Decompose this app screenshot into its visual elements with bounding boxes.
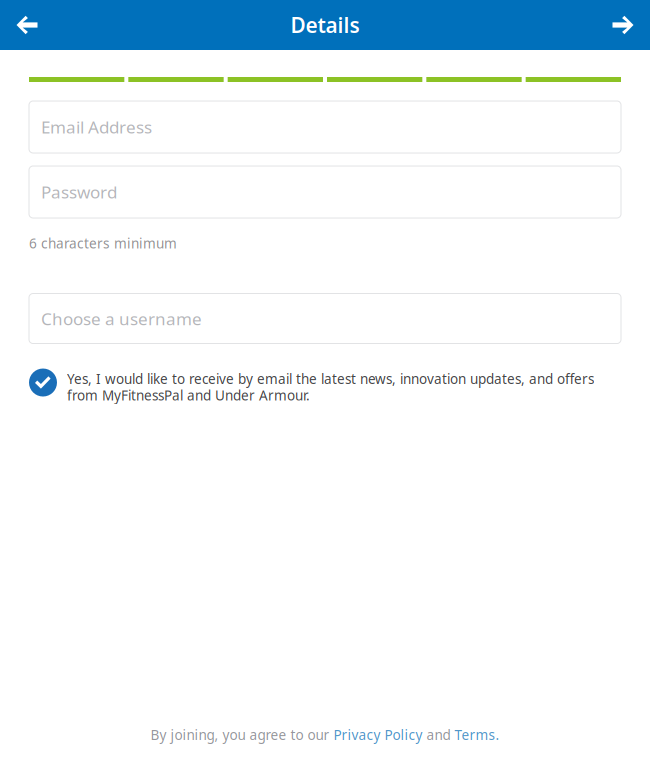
- staticText: Yes, I would like to receive by email th…: [67, 369, 594, 388]
- button[interactable]: Next: [596, 0, 650, 50]
- button[interactable]: Choose a username: [29, 293, 621, 343]
- button[interactable]: Yes, I would like to receive by email th…: [29, 368, 621, 404]
- button[interactable]: Privacy Policy: [333, 725, 422, 744]
- staticText: Terms.: [454, 725, 499, 744]
- button[interactable]: Email Address: [29, 101, 621, 153]
- button[interactable]: Terms.: [454, 725, 499, 744]
- staticText: Email Address: [41, 115, 152, 139]
- staticText: 6 characters minimum: [29, 234, 177, 252]
- button[interactable]: Back: [0, 0, 54, 50]
- staticText: Password: [41, 180, 117, 204]
- staticText: from MyFitnessPal and Under Armour.: [67, 386, 310, 404]
- staticText: Details: [290, 11, 359, 39]
- staticText: Privacy Policy: [333, 725, 422, 744]
- button[interactable]: Password: [29, 166, 621, 218]
- staticText: Choose a username: [41, 307, 202, 330]
- staticText: and: [422, 725, 454, 744]
- staticText: By joining, you agree to our: [150, 725, 333, 744]
